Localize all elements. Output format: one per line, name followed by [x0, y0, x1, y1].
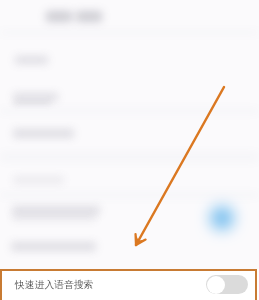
button[interactable]: 快速进入语音搜索 — [0, 269, 259, 300]
staticText: 快速进入语音搜索 — [15, 279, 94, 291]
button[interactable] — [206, 275, 248, 294]
